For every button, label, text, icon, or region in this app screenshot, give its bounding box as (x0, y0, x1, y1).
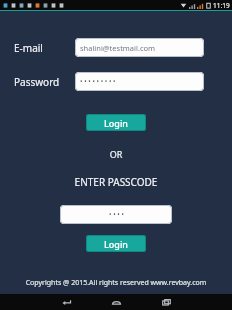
staticText: • • • • (109, 210, 124, 219)
button[interactable]: • • • • • • • • • (75, 72, 204, 91)
staticText: Login (104, 238, 128, 250)
staticText: OR (0, 148, 232, 160)
staticText: shalini@testmail.com (80, 43, 156, 53)
button[interactable]: Login (86, 235, 146, 252)
button[interactable]: Back (41, 294, 91, 310)
staticText: Password (14, 75, 60, 89)
button[interactable]: Home (91, 294, 141, 310)
staticText: E-mail (14, 41, 43, 55)
button[interactable]: Login (86, 114, 146, 131)
staticText: Copyrights @ 2015.All rights reserved ww… (0, 278, 232, 288)
staticText: Login (104, 117, 128, 129)
staticText: ENTER PASSCODE (0, 175, 232, 189)
staticText: 11:19 (213, 1, 230, 10)
button[interactable]: shalini@testmail.com (75, 38, 204, 57)
button[interactable]: Recent apps (141, 294, 191, 310)
button[interactable]: • • • • (60, 205, 172, 224)
staticText: • • • • • • • • • (80, 77, 116, 86)
